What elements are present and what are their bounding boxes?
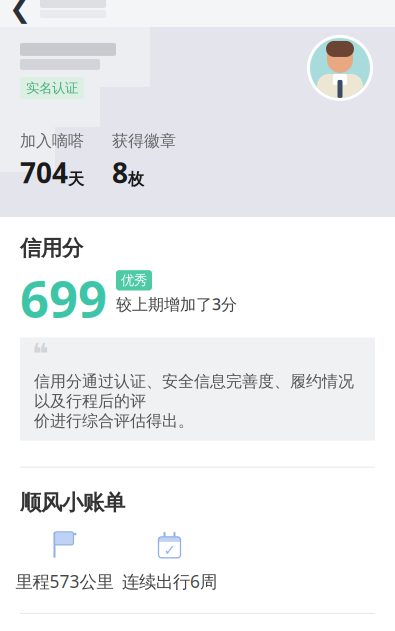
staticText: ✓ [163, 541, 175, 558]
staticText: 优秀 [121, 272, 147, 288]
staticText: ❮ [9, 0, 31, 23]
staticText: 699 [20, 264, 107, 331]
staticText: 获得徽章 [112, 131, 176, 151]
staticText: 里程573公里 [15, 570, 113, 593]
staticText: 信用分 [20, 235, 83, 261]
staticText: 较上期增加了3分 [116, 293, 237, 315]
staticText: 实名认证 [26, 80, 78, 96]
staticText: ❝ [32, 337, 49, 371]
staticText: 枚 [128, 169, 144, 189]
staticText: 704 [20, 154, 68, 191]
staticText: 加入嘀嗒 [20, 131, 84, 151]
button[interactable]: Back [0, 0, 40, 27]
staticText: 顺风小账单 [20, 490, 125, 516]
staticText: 连续出行6周 [122, 570, 217, 593]
staticText: 天 [68, 169, 84, 189]
staticText: 信用分通过认证、安全信息完善度、履约情况以及行程后的评 价进行综合评估得出。 [34, 372, 354, 431]
staticText: 8 [112, 154, 128, 191]
